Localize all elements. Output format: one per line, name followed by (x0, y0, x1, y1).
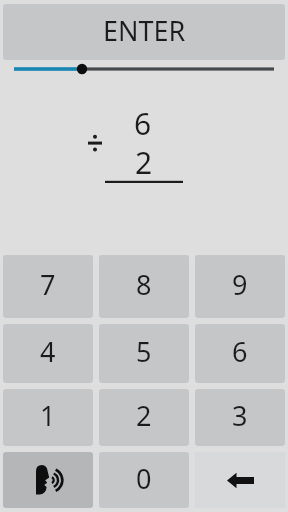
button[interactable]: 3 (195, 389, 285, 446)
button[interactable]: 5 (99, 324, 189, 383)
button[interactable]: 8 (99, 255, 189, 318)
staticText: 6 (232, 333, 248, 370)
staticText: ENTER (103, 12, 186, 49)
staticText: 6 (134, 103, 152, 143)
button[interactable]: ENTER (3, 4, 285, 60)
staticText: 2 (135, 142, 153, 182)
staticText: 1 (40, 397, 56, 434)
button[interactable] (6, 58, 282, 80)
staticText: 9 (232, 266, 248, 303)
button[interactable] (3, 452, 93, 508)
button[interactable]: 0 (99, 452, 189, 508)
staticText: 0 (136, 460, 152, 497)
button[interactable]: 7 (3, 255, 93, 318)
staticText: 3 (232, 397, 248, 434)
staticText: 2 (136, 397, 152, 434)
staticText: 7 (40, 266, 56, 303)
button[interactable]: 9 (195, 255, 285, 318)
button[interactable]: 4 (3, 324, 93, 383)
button[interactable]: 1 (3, 389, 93, 446)
staticText: 8 (136, 266, 152, 303)
staticText: 5 (136, 333, 152, 370)
staticText: 4 (40, 333, 56, 370)
button[interactable]: 2 (99, 389, 189, 446)
button[interactable] (195, 452, 285, 508)
button[interactable]: 6 (195, 324, 285, 383)
